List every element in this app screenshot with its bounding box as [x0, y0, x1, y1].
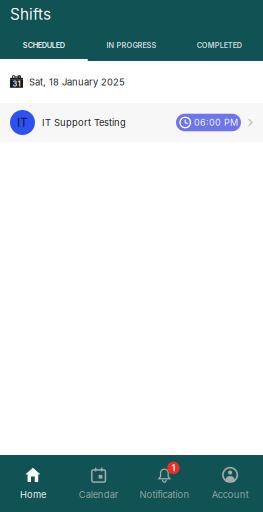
button[interactable]: SCHEDULED	[0, 40, 88, 61]
button[interactable]: IN PROGRESS	[88, 40, 175, 61]
button[interactable]: 1	[131, 455, 197, 512]
staticText: 06:00 PM	[194, 117, 238, 128]
staticText: Notification	[139, 489, 189, 500]
staticText: 1	[171, 462, 175, 473]
staticText: Home	[20, 489, 46, 500]
button[interactable]: Calendar	[66, 455, 132, 512]
staticText: Account	[212, 489, 249, 500]
staticText: SCHEDULED	[23, 41, 65, 50]
button[interactable]: IT	[0, 103, 263, 142]
button[interactable]: Home	[0, 455, 66, 512]
staticText: 31	[12, 79, 20, 88]
staticText: COMPLETED	[197, 41, 242, 50]
button[interactable]: Account	[197, 455, 263, 512]
staticText: IN PROGRESS	[106, 41, 156, 50]
staticText: Calendar	[79, 489, 119, 500]
button[interactable]: COMPLETED	[175, 40, 263, 61]
staticText: IT	[17, 115, 28, 130]
staticText: Shifts	[10, 5, 51, 24]
staticText: IT Support Testing	[42, 117, 126, 128]
staticText: Sat, 18 January 2025	[29, 76, 125, 88]
